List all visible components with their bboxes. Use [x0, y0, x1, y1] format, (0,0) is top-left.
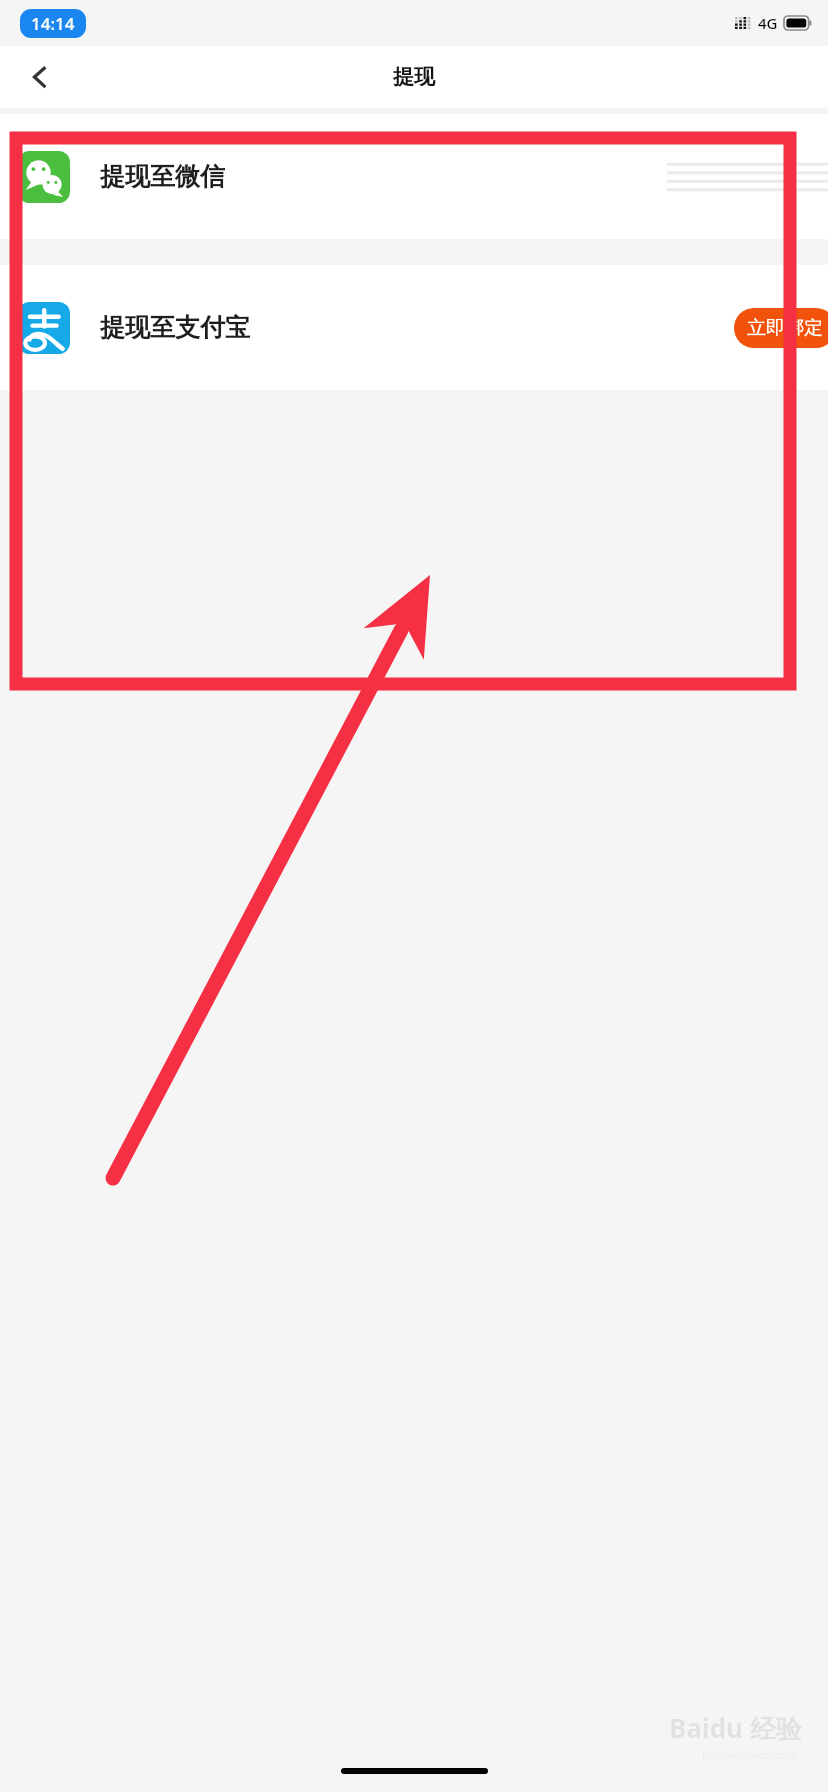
button[interactable]: 提现至微信 [0, 114, 828, 239]
staticText: 提现 [393, 64, 435, 90]
button[interactable]: 立即绑定 [734, 308, 828, 348]
staticText: 立即绑定 [747, 316, 823, 340]
staticText: 提现至微信 [100, 161, 225, 192]
staticText: 14:14 [31, 12, 75, 35]
staticText: 4G [758, 13, 778, 33]
button[interactable]: 提现至支付宝 [0, 265, 828, 390]
staticText: Baidu 经验 [669, 1710, 802, 1746]
staticText: 提现至支付宝 [100, 312, 250, 343]
button[interactable]: Back [18, 54, 64, 100]
